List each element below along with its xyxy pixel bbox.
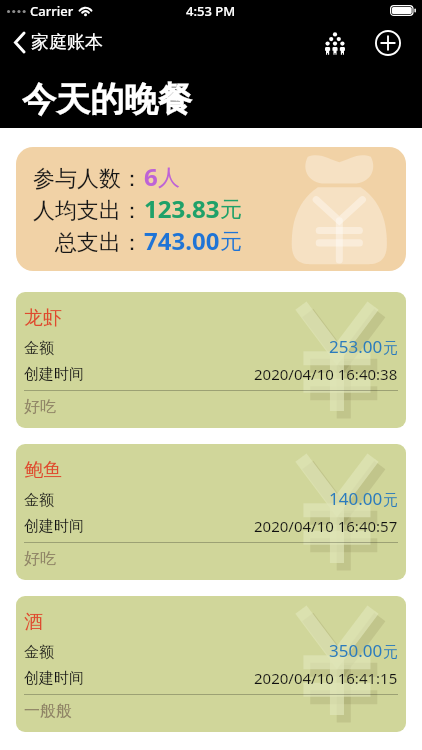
staticText: 2020/04/10 16:40:57 <box>254 516 398 536</box>
staticText: 743.00 <box>144 224 220 257</box>
staticText: 人 <box>158 164 180 192</box>
staticText: 元 <box>383 491 398 510</box>
staticText: 参与人数： <box>32 165 143 193</box>
button[interactable]: Members <box>316 25 354 61</box>
staticText: 创建时间 <box>24 365 84 384</box>
staticText: 6 <box>144 160 158 193</box>
staticText: 好吃 <box>24 549 56 569</box>
staticText: 元 <box>383 339 398 358</box>
staticText: 创建时间 <box>24 517 84 536</box>
staticText: 元 <box>220 196 242 224</box>
staticText: 金额 <box>24 339 54 358</box>
staticText: 一般般 <box>24 701 72 721</box>
staticText: 人均支出： <box>32 197 143 225</box>
staticText: 350.00 <box>329 639 383 662</box>
staticText: 今天的晚餐 <box>22 78 192 121</box>
button[interactable]: 酒 <box>16 596 406 732</box>
button[interactable]: 参与人数： <box>16 147 406 271</box>
staticText: 元 <box>383 643 398 662</box>
staticText: 金额 <box>24 491 54 510</box>
staticText: 2020/04/10 16:41:15 <box>254 668 398 688</box>
button[interactable]: 鲍鱼 <box>16 444 406 580</box>
staticText: 253.00 <box>329 335 383 358</box>
button[interactable]: Add <box>369 25 407 61</box>
staticText: 123.83 <box>144 192 220 225</box>
staticText: 140.00 <box>329 487 383 510</box>
staticText: 总支出： <box>32 229 143 257</box>
staticText: 金额 <box>24 643 54 662</box>
staticText: Carrier <box>30 2 74 20</box>
staticText: 鲍鱼 <box>24 458 62 482</box>
staticText: 好吃 <box>24 397 56 417</box>
staticText: 龙虾 <box>24 306 62 330</box>
staticText: 4:53 PM <box>186 2 236 20</box>
staticText: 元 <box>220 228 242 256</box>
staticText: 创建时间 <box>24 669 84 688</box>
button[interactable]: 家庭账本 <box>9 26 103 58</box>
staticText: 酒 <box>24 610 43 634</box>
button[interactable]: 龙虾 <box>16 292 406 428</box>
staticText: 家庭账本 <box>31 31 103 54</box>
staticText: 2020/04/10 16:40:38 <box>254 364 398 384</box>
